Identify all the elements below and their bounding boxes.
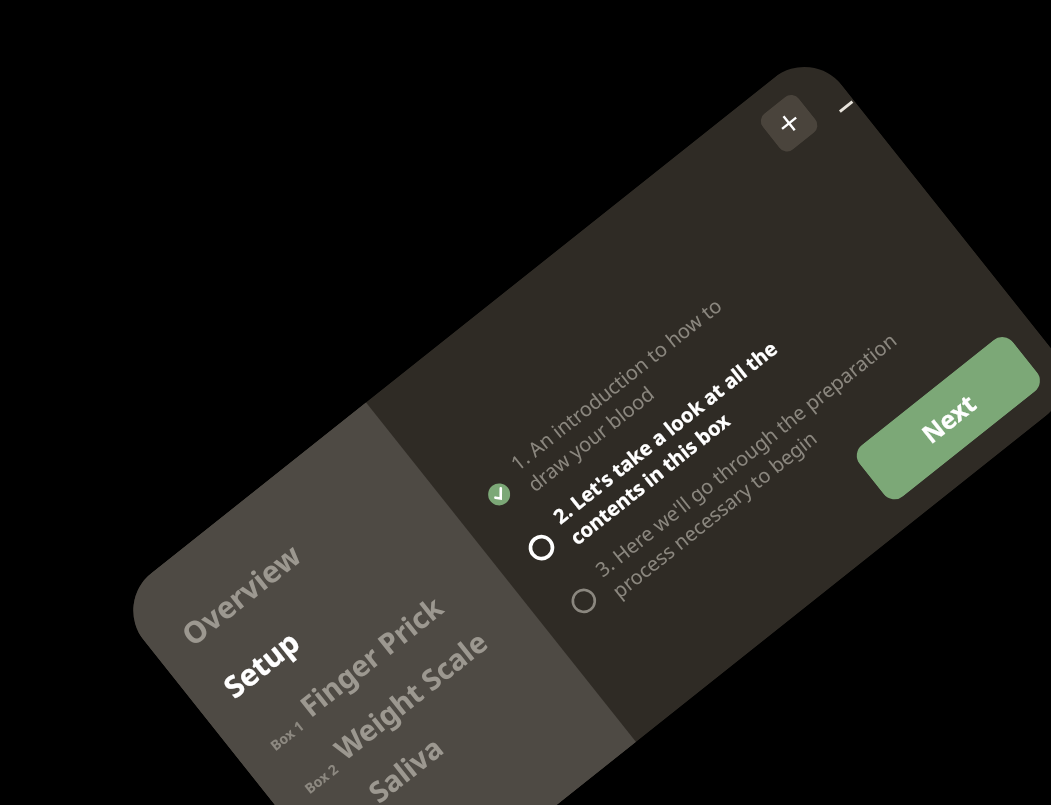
button[interactable]: 1. An introduction to how to draw your b… — [471, 173, 894, 525]
button[interactable]: 3. Here we'll go through the preparation… — [555, 279, 979, 631]
staticText: Setup — [215, 621, 307, 707]
staticText: Saliva — [360, 727, 451, 805]
button[interactable]: 2. Let's take a look at all the contents… — [513, 226, 936, 578]
staticText: Next — [914, 386, 983, 450]
staticText: Finger Prick — [291, 586, 451, 725]
staticText: Box 2 — [300, 759, 342, 798]
button[interactable]: Box 2 — [288, 599, 524, 798]
staticText: Box 1 — [266, 716, 308, 755]
button[interactable]: Box 1 — [254, 556, 489, 755]
staticText: 2. Let's take a look at all the contents… — [547, 335, 799, 551]
button[interactable]: Setup — [215, 507, 451, 707]
staticText: Weight Scale — [326, 621, 495, 768]
staticText: 3. Here we'll go through the preparation… — [590, 326, 919, 604]
staticText: Overview — [173, 534, 310, 654]
staticText: 1. An introduction to how to draw your b… — [505, 291, 744, 497]
button[interactable]: Box 3 — [322, 642, 558, 805]
button[interactable]: Next — [851, 331, 1046, 505]
button[interactable]: Add — [757, 91, 821, 155]
